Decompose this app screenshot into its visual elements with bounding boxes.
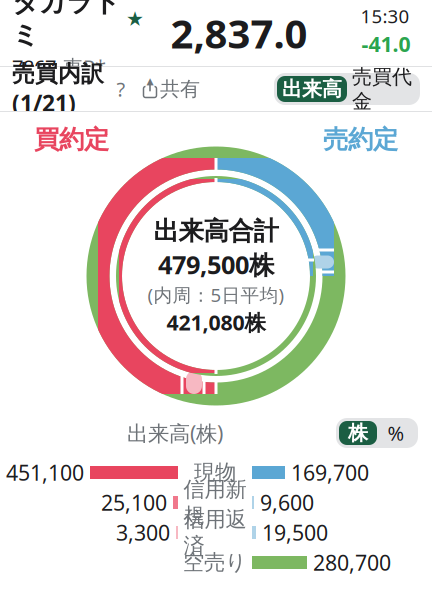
staticText: 169,700 [291,458,369,487]
staticText: 7867 [12,53,56,80]
staticText: 現物 [194,459,236,486]
staticText: -41.0 [361,29,410,58]
staticText: 01/21 15:30 [360,0,411,28]
staticText: 479,500株 [158,248,274,281]
button[interactable]: 売買代金 [347,76,417,102]
staticText: (内周：5日平均) [147,282,284,307]
button[interactable]: ▲ [138,72,204,106]
staticText: 共有 [160,77,200,101]
staticText: 出来高(株) [127,419,223,447]
staticText: 421,080株 [166,308,265,336]
staticText: 19,500 [262,518,328,547]
staticText: 2,837.0 [170,6,307,59]
staticText: 信用返済 [183,506,246,559]
staticText: 買約定 [34,124,109,155]
staticText: 株 [348,421,368,445]
staticText: 出来高 [282,77,342,101]
staticText: 売買内訳(1/21) [12,60,104,118]
staticText: ★ [126,7,144,30]
button[interactable]: 7867 [12,53,162,80]
staticText: ▲ [146,76,153,86]
staticText: 25,100 [101,488,167,517]
staticText: 信用新規 [183,476,246,529]
staticText: ⌄ [113,58,125,75]
staticText: -1.42% [352,59,420,87]
staticText: 東P* [63,53,106,80]
button[interactable]: 出来高 [277,76,347,102]
staticText: ? [116,76,125,102]
staticText: 3,300 [116,518,170,547]
button[interactable]: % [377,421,415,445]
staticText: 9,600 [260,488,314,517]
staticText: 空売り [183,549,247,576]
staticText: % [387,420,404,446]
staticText: 451,100 [6,458,84,487]
staticText: 出来高合計 [153,216,278,247]
button[interactable]: ヘルプ [104,72,138,106]
staticText: 売約定 [323,124,398,155]
staticText: 280,700 [313,548,391,577]
button[interactable]: 株 [339,421,377,445]
staticText: タカラトミ [12,0,120,51]
staticText: 売買代金 [352,64,412,113]
